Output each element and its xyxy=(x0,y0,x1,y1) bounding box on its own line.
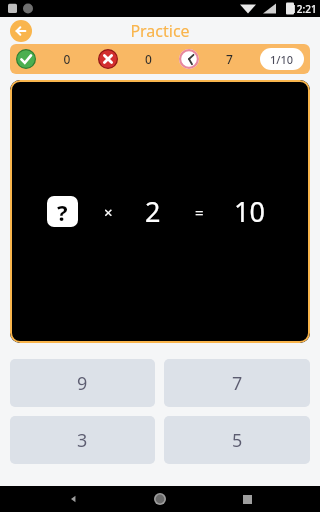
staticText: Practice xyxy=(130,20,190,42)
button[interactable]: Home xyxy=(147,486,173,512)
staticText: = xyxy=(195,202,204,222)
button[interactable]: 9 xyxy=(10,359,155,407)
staticText: 12:21 xyxy=(291,2,317,16)
button[interactable]: Recent apps xyxy=(234,486,260,512)
staticText: 0 xyxy=(36,51,98,67)
staticText: 3 xyxy=(77,428,88,453)
staticText: 10 xyxy=(234,193,265,230)
staticText: × xyxy=(104,202,113,222)
button[interactable]: 3 xyxy=(10,416,155,464)
staticText: 2 xyxy=(145,193,161,230)
button[interactable]: 5 xyxy=(164,416,310,464)
staticText: ? xyxy=(57,197,68,227)
staticText: 1/10 xyxy=(270,52,294,67)
staticText: 5 xyxy=(232,428,243,453)
button[interactable]: Back xyxy=(61,486,87,512)
staticText: 9 xyxy=(77,371,88,396)
staticText: 7 xyxy=(232,371,243,396)
staticText: 7 xyxy=(199,51,260,67)
button[interactable]: Unknown value xyxy=(47,196,78,227)
staticText: 0 xyxy=(118,51,179,67)
button[interactable]: Back xyxy=(10,20,32,42)
button[interactable]: 7 xyxy=(164,359,310,407)
